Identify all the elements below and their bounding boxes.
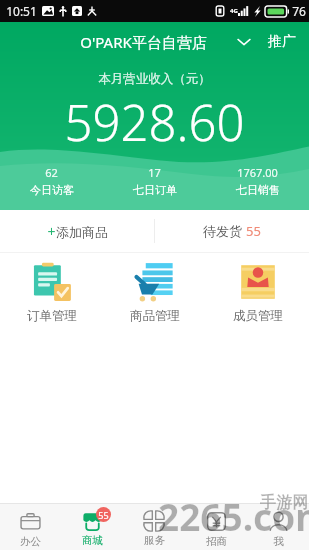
staticText: 办公 (20, 535, 41, 548)
staticText: 手游网 (260, 493, 308, 513)
staticText: 招商 (206, 535, 227, 548)
button[interactable]: 55 (61, 508, 123, 547)
staticText: 4G (230, 7, 238, 15)
staticText: 商城 (82, 534, 103, 547)
button[interactable]: 成员管理 (206, 257, 309, 328)
button[interactable]: 推广 (268, 33, 296, 51)
button[interactable]: 待发货 (155, 210, 309, 252)
button[interactable]: 招商 (185, 507, 247, 548)
staticText: 1767.00 (237, 165, 278, 180)
button[interactable]: 办公 (0, 507, 61, 548)
button[interactable]: 17 (103, 165, 206, 197)
staticText: 添加商品 (56, 224, 108, 240)
staticText: 55 (246, 222, 261, 240)
staticText: 5928.60 (0, 89, 309, 156)
button[interactable]: 服务 (123, 507, 185, 547)
staticText: 推广 (268, 33, 296, 51)
button[interactable]: 订单管理 (0, 257, 103, 328)
staticText: 55 (98, 509, 109, 521)
button[interactable]: 商品管理 (103, 257, 206, 328)
staticText: 七日订单 (133, 183, 177, 197)
staticText: 76 (292, 3, 306, 19)
staticText: 订单管理 (27, 308, 77, 324)
staticText: 2265.com (158, 491, 309, 541)
button[interactable]: 我 (247, 507, 309, 548)
button[interactable]: 62 (0, 165, 103, 197)
button[interactable]: 1767.00 (206, 165, 309, 197)
staticText: 商品管理 (130, 308, 180, 324)
staticText: O'PARK平台自营店 (80, 32, 207, 52)
staticText: 本月营业收入（元） (0, 71, 309, 87)
button[interactable]: O'PARK平台自营店 (80, 32, 250, 52)
staticText: 待发货 (203, 223, 242, 239)
staticText: 服务 (144, 534, 165, 547)
staticText: 62 (45, 165, 58, 180)
staticText: 成员管理 (233, 308, 283, 324)
staticText: 七日销售 (236, 183, 280, 197)
staticText: 今日访客 (30, 183, 74, 197)
staticText: 我 (273, 535, 284, 548)
button[interactable]: + (0, 210, 154, 252)
staticText: + (47, 222, 56, 241)
staticText: 10:51 (6, 3, 37, 19)
staticText: 17 (148, 165, 161, 180)
